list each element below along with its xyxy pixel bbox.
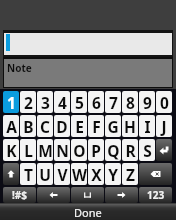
staticText: J: [161, 116, 167, 137]
staticText: 9: [143, 92, 152, 113]
staticText: C: [40, 116, 50, 137]
button[interactable]: B: [20, 115, 36, 137]
button[interactable]: Z: [122, 163, 138, 185]
staticText: F: [92, 116, 101, 137]
staticText: 3: [41, 92, 50, 113]
staticText: Note: [7, 61, 32, 75]
button[interactable]: Shift: [3, 163, 19, 185]
staticText: Done: [74, 205, 102, 220]
staticText: H: [124, 116, 136, 137]
staticText: N: [56, 140, 69, 161]
button[interactable]: C: [37, 115, 53, 137]
staticText: K: [6, 140, 17, 161]
button[interactable]: G: [105, 115, 121, 137]
button[interactable]: R: [122, 139, 138, 161]
button[interactable]: !#$: [3, 187, 36, 203]
staticText: R: [125, 140, 136, 161]
button[interactable]: O: [71, 139, 87, 161]
staticText: D: [56, 116, 68, 137]
button[interactable]: 2: [20, 91, 36, 113]
button[interactable]: V: [54, 163, 70, 185]
staticText: 4: [58, 92, 67, 113]
button[interactable]: Left: [37, 187, 70, 203]
button[interactable]: Note: [4, 59, 172, 87]
staticText: 7: [109, 92, 118, 113]
button[interactable]: U: [37, 163, 53, 185]
button[interactable]: S: [139, 139, 155, 161]
button[interactable]: Space: [71, 187, 104, 203]
staticText: X: [91, 164, 102, 185]
button[interactable]: 8: [122, 91, 138, 113]
button[interactable]: H: [122, 115, 138, 137]
button[interactable]: 4: [54, 91, 70, 113]
button[interactable]: E: [71, 115, 87, 137]
staticText: V: [57, 164, 68, 185]
button[interactable]: W: [71, 163, 87, 185]
staticText: G: [107, 116, 119, 137]
staticText: 0: [160, 92, 169, 113]
staticText: W: [72, 164, 87, 185]
button[interactable]: 9: [139, 91, 155, 113]
button[interactable]: Done: [0, 204, 176, 220]
staticText: 2: [24, 92, 33, 113]
button[interactable]: 123: [139, 187, 172, 203]
staticText: I: [144, 116, 151, 137]
staticText: B: [23, 116, 34, 137]
staticText: Q: [107, 140, 120, 161]
button[interactable]: L: [20, 139, 36, 161]
staticText: T: [24, 164, 33, 185]
staticText: 8: [126, 92, 135, 113]
button[interactable]: 5: [71, 91, 87, 113]
staticText: 6: [92, 92, 101, 113]
button[interactable]: A: [3, 115, 19, 137]
staticText: !#$: [12, 188, 27, 202]
button[interactable]: F: [88, 115, 104, 137]
staticText: 1: [7, 92, 16, 113]
button[interactable]: Y: [105, 163, 121, 185]
button[interactable]: D: [54, 115, 70, 137]
button[interactable]: I: [139, 115, 155, 137]
button[interactable]: Q: [105, 139, 121, 161]
button[interactable]: 3: [37, 91, 53, 113]
button[interactable]: 0: [156, 91, 172, 113]
button[interactable]: N: [54, 139, 70, 161]
staticText: Z: [126, 164, 135, 185]
button[interactable]: M: [37, 139, 53, 161]
button[interactable]: 7: [105, 91, 121, 113]
staticText: S: [143, 140, 152, 161]
button[interactable]: J: [156, 115, 172, 137]
staticText: M: [38, 140, 53, 161]
staticText: E: [75, 116, 84, 137]
staticText: 123: [147, 188, 165, 202]
staticText: P: [91, 140, 101, 161]
button[interactable]: 6: [88, 91, 104, 113]
staticText: A: [6, 116, 17, 137]
button[interactable]: X: [88, 163, 104, 185]
staticText: L: [24, 140, 33, 161]
staticText: U: [39, 164, 51, 185]
staticText: 5: [75, 92, 84, 113]
staticText: Y: [108, 164, 118, 185]
button[interactable]: [4, 33, 172, 55]
staticText: O: [73, 140, 86, 161]
button[interactable]: Enter: [156, 139, 172, 161]
button[interactable]: P: [88, 139, 104, 161]
button[interactable]: T: [20, 163, 36, 185]
button[interactable]: Right: [105, 187, 138, 203]
button[interactable]: K: [3, 139, 19, 161]
button[interactable]: Backspace: [139, 163, 172, 185]
button[interactable]: 1: [3, 91, 19, 113]
